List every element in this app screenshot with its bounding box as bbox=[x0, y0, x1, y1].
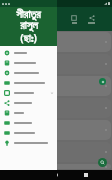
button[interactable] bbox=[0, 78, 57, 88]
button[interactable] bbox=[0, 138, 57, 148]
button[interactable] bbox=[0, 120, 111, 140]
button[interactable] bbox=[0, 58, 57, 68]
button[interactable]: Add bbox=[99, 78, 106, 85]
staticText: রাসুল bbox=[20, 20, 38, 31]
button[interactable] bbox=[0, 76, 111, 96]
button[interactable] bbox=[0, 88, 57, 98]
button[interactable] bbox=[0, 128, 57, 138]
button[interactable]: Save bbox=[70, 14, 78, 25]
staticText: সীরাতুর bbox=[16, 9, 41, 20]
button[interactable] bbox=[0, 108, 57, 118]
button[interactable]: Search bbox=[98, 158, 107, 167]
button[interactable] bbox=[0, 68, 57, 78]
button[interactable]: Home bbox=[52, 171, 60, 179]
button[interactable]: Recents bbox=[82, 171, 90, 179]
button[interactable] bbox=[0, 54, 111, 74]
button[interactable] bbox=[0, 32, 111, 52]
button[interactable] bbox=[0, 164, 111, 169]
button[interactable] bbox=[0, 98, 111, 118]
button[interactable] bbox=[0, 48, 57, 58]
button[interactable] bbox=[0, 142, 111, 162]
button[interactable]: সীরাতুর bbox=[0, 7, 57, 46]
button[interactable] bbox=[0, 98, 57, 108]
button[interactable] bbox=[0, 118, 57, 128]
button[interactable]: Share bbox=[87, 14, 96, 25]
staticText: (ছাঃ) bbox=[20, 31, 37, 45]
